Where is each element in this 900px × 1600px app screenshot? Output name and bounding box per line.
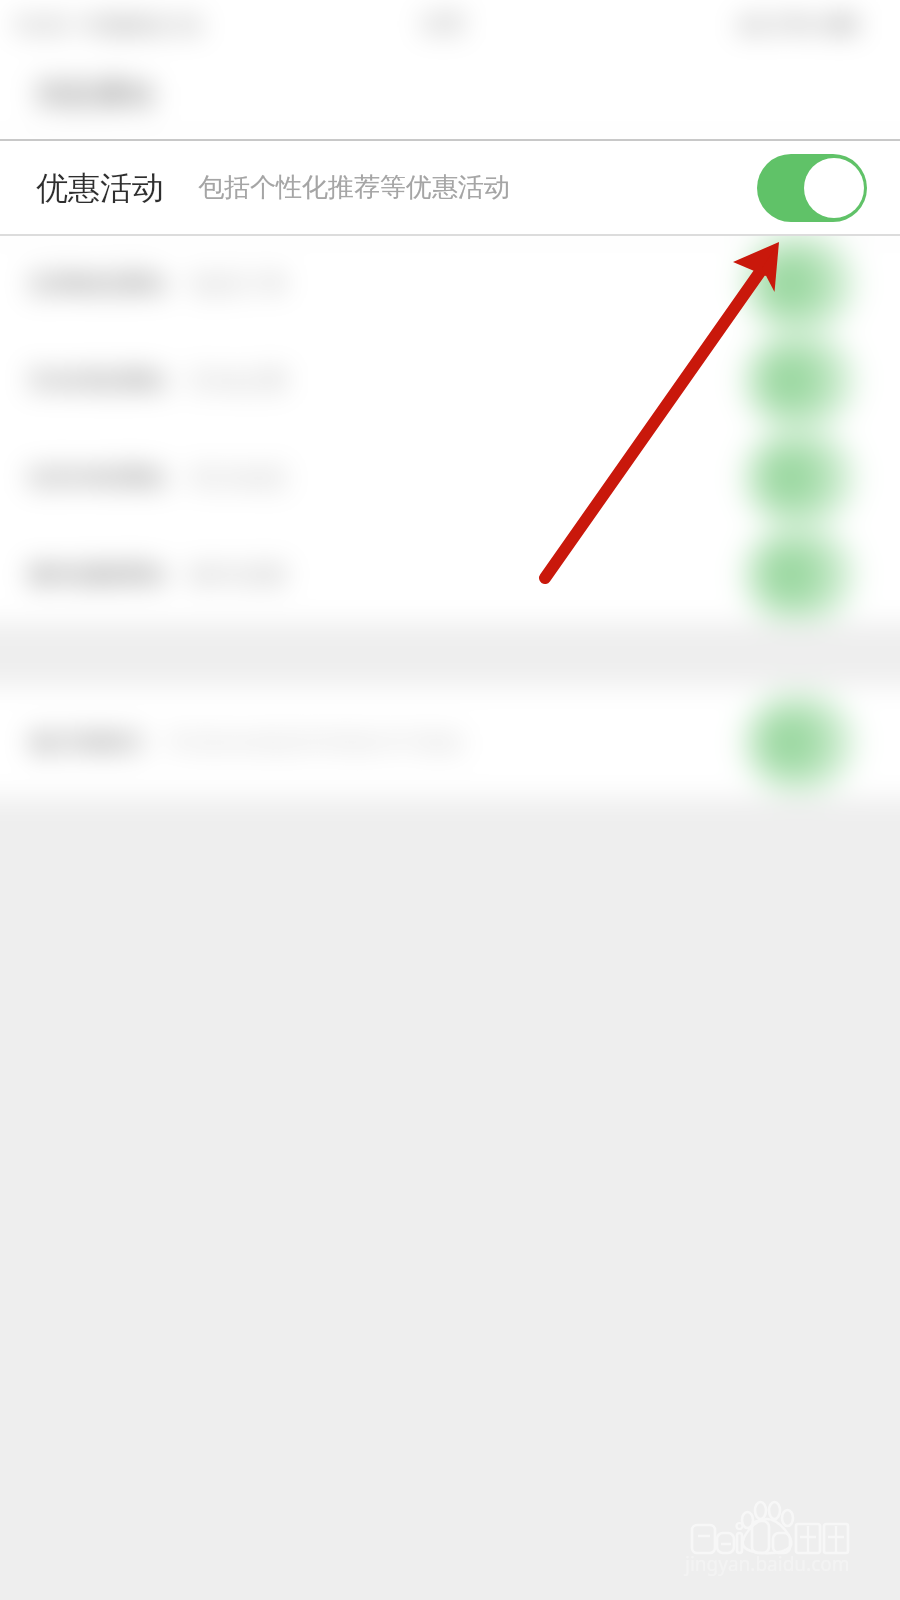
button[interactable]: 互动消息通知 [0, 332, 900, 429]
button[interactable]: 免打扰模式 [0, 686, 900, 798]
button[interactable]: 优惠活动 [0, 141, 900, 234]
staticText: 10:35 中国移动 5G [12, 9, 202, 39]
button[interactable]: 交易物流通知 [0, 235, 900, 332]
staticText: 社区内容通知 [28, 463, 166, 492]
staticText: 互动消息通知 [28, 366, 166, 395]
staticText: 包括个性化推荐等优惠活动 [198, 171, 510, 204]
button[interactable]: 服务提醒通知 [0, 526, 900, 623]
button[interactable]: Toggle switch [724, 235, 874, 332]
staticText: 消息通知 [34, 75, 154, 113]
button[interactable]: Toggle switch [724, 526, 874, 623]
staticText: 服务提醒通知 [28, 560, 166, 589]
button[interactable]: Toggle switch [724, 332, 874, 429]
staticText: 优惠活动 [36, 168, 164, 208]
button[interactable]: Toggle switch [757, 154, 867, 222]
staticText: 免打扰模式 [28, 728, 143, 757]
staticText: 交易物流通知 [28, 269, 166, 298]
button[interactable]: Toggle switch [724, 429, 874, 526]
button[interactable]: 社区内容通知 [0, 429, 900, 526]
button[interactable]: Toggle switch [724, 691, 874, 794]
